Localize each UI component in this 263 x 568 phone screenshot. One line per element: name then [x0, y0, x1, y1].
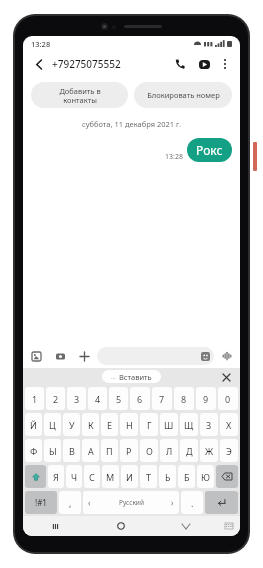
- staticText: Ф: [30, 445, 38, 457]
- button[interactable]: Call: [171, 55, 189, 73]
- button[interactable]: 2: [46, 387, 65, 410]
- staticText: Вставить: [119, 372, 152, 382]
- button[interactable]: Г: [140, 413, 158, 436]
- button[interactable]: Camera: [52, 348, 68, 364]
- button[interactable]: Э: [220, 439, 238, 462]
- button[interactable]: 1: [25, 387, 44, 410]
- button[interactable]: Я: [48, 465, 64, 488]
- button[interactable]: Б: [178, 465, 195, 488]
- button[interactable]: Й: [25, 413, 42, 436]
- staticText: Б: [184, 471, 190, 483]
- staticText: !#1: [35, 497, 47, 508]
- staticText: Русский: [119, 498, 144, 507]
- staticText: 5: [116, 393, 122, 405]
- button[interactable]: 4: [88, 387, 107, 410]
- button[interactable]: Блокировать номер: [134, 82, 232, 108]
- button[interactable]: 7: [152, 387, 172, 410]
- button[interactable]: Enter: [205, 491, 238, 514]
- button[interactable]: И: [121, 465, 138, 488]
- button[interactable]: Close: [219, 370, 233, 384]
- button[interactable]: Gallery: [28, 348, 44, 364]
- button[interactable]: .: [181, 491, 203, 514]
- staticText: +79275075552: [52, 57, 121, 71]
- staticText: Е: [107, 419, 113, 431]
- button[interactable]: Р: [120, 439, 138, 462]
- button[interactable]: П: [101, 439, 118, 462]
- button[interactable]: Video call: [195, 55, 213, 73]
- button[interactable]: У: [63, 413, 80, 436]
- button[interactable]: ,: [59, 491, 81, 514]
- button[interactable]: Backspace: [216, 465, 238, 488]
- button[interactable]: В: [63, 439, 80, 462]
- button[interactable]: 6: [130, 387, 150, 410]
- button[interactable]: Ь: [159, 465, 176, 488]
- button[interactable]: 5: [109, 387, 128, 410]
- button[interactable]: З: [200, 413, 218, 436]
- staticText: Т: [146, 471, 152, 483]
- staticText: В: [69, 445, 75, 457]
- button[interactable]: Hide keyboard: [218, 516, 240, 536]
- staticText: 6: [137, 393, 143, 405]
- button[interactable]: О: [140, 439, 158, 462]
- button[interactable]: More options: [217, 56, 233, 72]
- button[interactable]: Д: [180, 439, 198, 462]
- button[interactable]: [97, 347, 214, 365]
- button[interactable]: Н: [120, 413, 138, 436]
- staticText: А: [88, 445, 94, 457]
- button[interactable]: Ф: [25, 439, 42, 462]
- staticText: 13:28: [31, 39, 51, 49]
- staticText: ›: [171, 497, 174, 508]
- button[interactable]: …: [102, 370, 161, 383]
- staticText: Ь: [165, 471, 171, 483]
- button[interactable]: Ц: [44, 413, 61, 436]
- button[interactable]: М: [102, 465, 119, 488]
- button[interactable]: Щ: [180, 413, 198, 436]
- button[interactable]: Е: [101, 413, 118, 436]
- staticText: Й: [30, 419, 37, 431]
- staticText: 3: [74, 393, 80, 405]
- button[interactable]: Добавить в контакты: [31, 82, 128, 108]
- staticText: Ю: [201, 471, 210, 483]
- button[interactable]: Рокс: [187, 138, 232, 162]
- button[interactable]: 8: [174, 387, 194, 410]
- button[interactable]: С: [84, 465, 100, 488]
- button[interactable]: !#1: [25, 491, 57, 514]
- button[interactable]: 9: [196, 387, 216, 410]
- staticText: .: [191, 497, 194, 509]
- button[interactable]: Recents: [23, 516, 88, 536]
- staticText: 7: [159, 393, 165, 405]
- staticText: 13:28: [165, 152, 183, 162]
- button[interactable]: 0: [218, 387, 238, 410]
- button[interactable]: 3: [67, 387, 86, 410]
- button[interactable]: А: [82, 439, 99, 462]
- staticText: суббота, 11 декабря 2021 г.: [23, 119, 240, 129]
- staticText: 4: [95, 393, 101, 405]
- button[interactable]: Home: [88, 516, 153, 536]
- button[interactable]: Back: [153, 516, 218, 536]
- button[interactable]: К: [82, 413, 99, 436]
- staticText: Ж: [205, 445, 214, 457]
- button[interactable]: Voice message: [219, 348, 235, 364]
- button[interactable]: Ш: [160, 413, 178, 436]
- button[interactable]: Back: [30, 55, 48, 73]
- button[interactable]: ‹: [83, 491, 179, 514]
- staticText: 9: [203, 393, 209, 405]
- button[interactable]: Shift: [25, 465, 46, 488]
- staticText: С: [89, 471, 95, 483]
- staticText: Р: [126, 445, 132, 457]
- staticText: …: [111, 373, 116, 381]
- staticText: ,: [69, 497, 72, 509]
- staticText: Н: [126, 419, 133, 431]
- button[interactable]: Ж: [200, 439, 218, 462]
- staticText: 0: [225, 393, 231, 405]
- staticText: ‹: [88, 497, 91, 508]
- button[interactable]: Х: [220, 413, 238, 436]
- button[interactable]: Т: [140, 465, 157, 488]
- button[interactable]: Ч: [66, 465, 82, 488]
- button[interactable]: Л: [160, 439, 178, 462]
- button[interactable]: Ы: [44, 439, 61, 462]
- staticText: 1: [32, 393, 38, 405]
- button[interactable]: Add attachment: [76, 348, 92, 364]
- staticText: Ц: [49, 419, 56, 431]
- button[interactable]: Ю: [197, 465, 214, 488]
